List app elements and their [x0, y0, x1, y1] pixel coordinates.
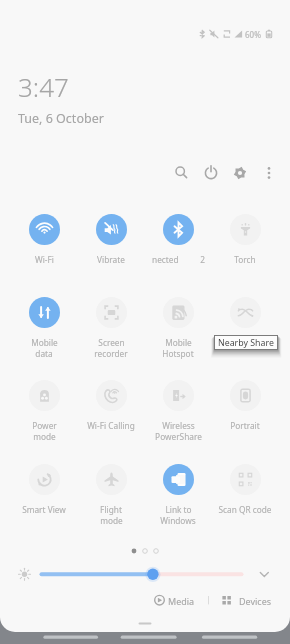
staticText: Vibrate: [97, 254, 125, 265]
staticText: Wi-Fi Calling: [87, 420, 135, 431]
staticText: Wireless: [162, 420, 195, 431]
staticText: recorder: [94, 348, 128, 359]
staticText: 60%: [245, 29, 261, 40]
button[interactable]: Link to: [145, 464, 211, 526]
button[interactable]: Screen: [78, 297, 144, 359]
staticText: Portrait: [230, 420, 260, 431]
staticText: mode: [100, 515, 123, 526]
staticText: Mobile: [165, 337, 192, 348]
button[interactable]: Mobile: [145, 297, 211, 359]
button[interactable]: nected 2: [145, 214, 211, 265]
button[interactable]: Wi-Fi: [11, 214, 77, 265]
staticText: Flight: [100, 504, 122, 515]
button[interactable]: Devices: [239, 594, 272, 607]
staticText: Windows: [160, 515, 196, 526]
button[interactable]: Power: [11, 380, 77, 442]
staticText: nected 2: [152, 254, 205, 265]
button[interactable]: [217, 594, 239, 607]
button[interactable]: More options: [254, 158, 284, 188]
button[interactable]: Mobile: [11, 297, 77, 359]
button[interactable]: Scan QR code: [212, 464, 278, 515]
staticText: Power: [32, 420, 57, 431]
staticText: 3:47: [18, 69, 69, 104]
button[interactable]: Search: [166, 157, 196, 187]
staticText: Nearby Share: [218, 337, 274, 349]
button[interactable]: [212, 297, 278, 348]
staticText: Torch: [234, 254, 256, 265]
staticText: Link to: [165, 504, 192, 515]
staticText: Hotspot: [162, 348, 194, 359]
button[interactable]: Wi-Fi Calling: [78, 380, 144, 431]
staticText: Tue, 6 October: [18, 110, 104, 127]
button[interactable]: Portrait: [212, 380, 278, 431]
button[interactable]: Nearby Share: [215, 336, 277, 349]
staticText: PowerShare: [155, 431, 202, 442]
button[interactable]: Wireless: [145, 380, 211, 442]
staticText: Devices: [239, 595, 272, 607]
staticText: Wi-Fi: [35, 254, 54, 265]
staticText: Smart View: [22, 504, 66, 515]
staticText: Screen: [98, 337, 125, 348]
staticText: Mobile: [31, 337, 58, 348]
button[interactable]: Smart View: [11, 464, 77, 515]
staticText: Media: [168, 595, 195, 607]
button[interactable]: Media: [153, 594, 195, 607]
button[interactable]: Vibrate: [78, 214, 144, 265]
button[interactable]: Torch: [212, 214, 278, 265]
button[interactable]: Power off: [196, 158, 226, 188]
button[interactable]: Settings: [225, 158, 255, 188]
staticText: mode: [33, 431, 56, 442]
staticText: data: [35, 348, 53, 359]
button[interactable]: Flight: [78, 464, 144, 526]
staticText: Scan QR code: [218, 504, 272, 515]
